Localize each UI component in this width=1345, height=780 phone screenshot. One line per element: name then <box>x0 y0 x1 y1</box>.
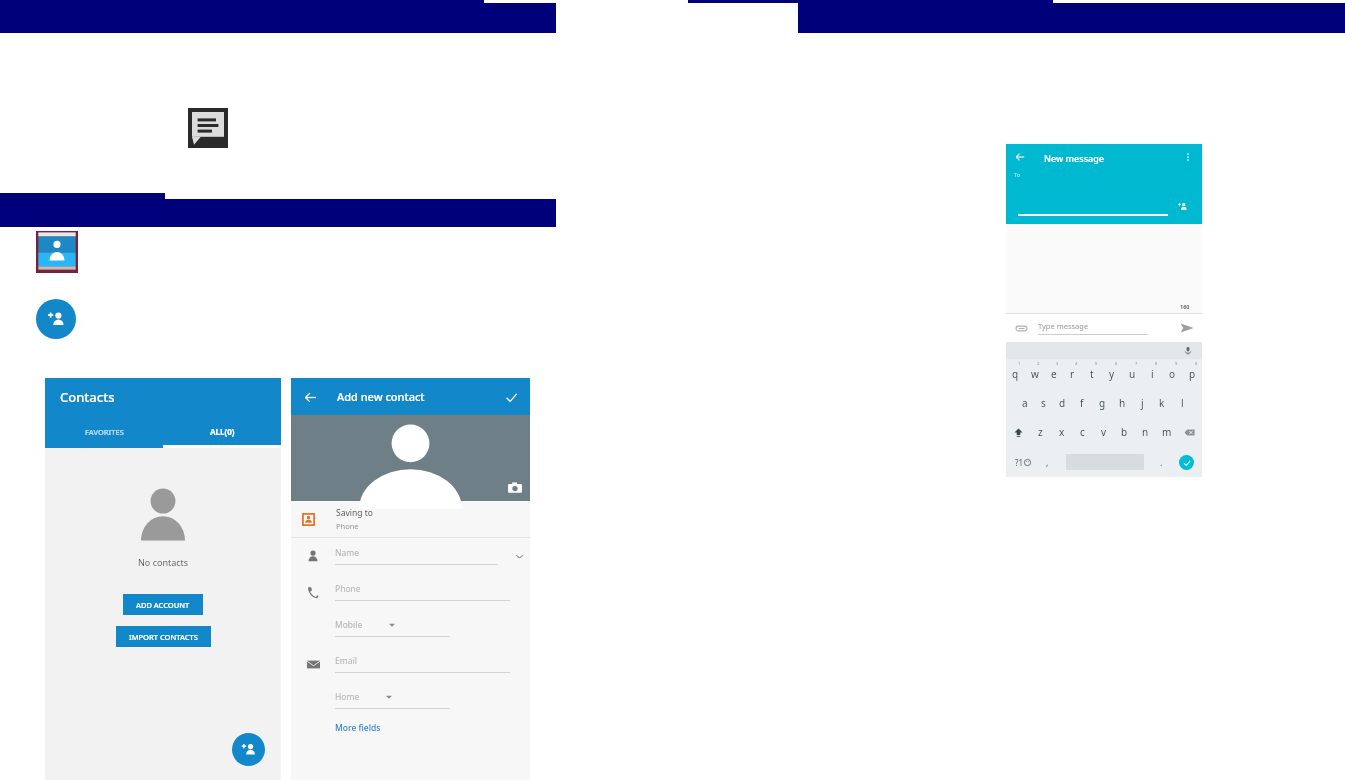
staticText: e <box>1051 367 1057 381</box>
staticText: No contacts <box>138 556 189 568</box>
button[interactable]: x <box>1051 417 1072 447</box>
staticText: Saving to <box>336 507 373 519</box>
staticText: 4 <box>1075 361 1078 366</box>
staticText: m <box>1162 425 1172 439</box>
button[interactable]: 7 <box>1122 359 1142 388</box>
staticText: Phone <box>335 583 361 595</box>
staticText: p <box>1189 367 1196 381</box>
staticText: 160 <box>1180 303 1190 310</box>
staticText: a <box>1022 396 1028 410</box>
button[interactable]: Email <box>291 646 530 682</box>
staticText: FAVORITES <box>85 427 124 437</box>
staticText: j <box>1141 396 1144 410</box>
button[interactable]: More fields <box>335 722 381 734</box>
staticText: 6 <box>1115 361 1118 366</box>
button[interactable]: a <box>1015 388 1034 417</box>
staticText: 3 <box>1056 361 1059 366</box>
staticText: b <box>1121 425 1128 439</box>
button[interactable]: Add contact <box>36 299 76 339</box>
staticText: c <box>1080 425 1085 439</box>
button[interactable]: Take photo <box>508 481 522 495</box>
button[interactable]: j <box>1132 388 1152 417</box>
button[interactable]: Create contact <box>232 733 265 766</box>
button[interactable]: ?1 <box>1006 447 1039 477</box>
staticText: . <box>1160 456 1163 468</box>
staticText: 0 <box>1195 361 1198 366</box>
button[interactable]: Attach <box>1014 321 1028 335</box>
button[interactable]: z <box>1030 417 1051 447</box>
staticText: Home <box>335 691 360 703</box>
button[interactable]: . <box>1153 447 1170 477</box>
staticText: More fields <box>335 722 381 734</box>
staticText: Add new contact <box>337 389 425 404</box>
button[interactable]: IMPORT CONTACTS <box>116 626 211 647</box>
button[interactable]: 3 <box>1044 359 1063 388</box>
button[interactable]: ADD ACCOUNT <box>123 594 203 615</box>
staticText: Email <box>335 655 357 667</box>
button[interactable]: Back <box>1011 148 1029 166</box>
button[interactable]: h <box>1112 388 1132 417</box>
button[interactable]: Voice input <box>1182 345 1194 357</box>
button[interactable]: ALL(0) <box>163 415 281 448</box>
button[interactable]: Home <box>291 682 530 718</box>
button[interactable]: k <box>1152 388 1172 417</box>
staticText: z <box>1038 425 1043 439</box>
button[interactable]: Saving to <box>291 501 530 537</box>
staticText: Type message <box>1038 321 1089 331</box>
button[interactable]: 2 <box>1025 359 1044 388</box>
button[interactable]: Phone <box>291 574 530 610</box>
button[interactable]: Name <box>291 538 530 574</box>
button[interactable]: 1 <box>1006 359 1025 388</box>
staticText: r <box>1070 367 1075 381</box>
staticText: q <box>1012 367 1019 381</box>
button[interactable]: c <box>1072 417 1093 447</box>
staticText: 1 <box>1018 361 1021 366</box>
button[interactable]: FAVORITES <box>45 415 163 448</box>
button[interactable]: 6 <box>1102 359 1122 388</box>
button[interactable]: Back <box>299 386 321 408</box>
button[interactable]: More options <box>1180 149 1196 165</box>
staticText: t <box>1090 367 1094 381</box>
staticText: , <box>1046 456 1049 468</box>
staticText: IMPORT CONTACTS <box>129 632 198 642</box>
button[interactable]: b <box>1114 417 1135 447</box>
staticText: ?1 <box>1015 457 1024 468</box>
button[interactable]: Send <box>1176 317 1198 339</box>
button[interactable]: Mobile <box>291 610 530 646</box>
button[interactable]: Add recipient <box>1174 198 1190 214</box>
button[interactable]: 8 <box>1142 359 1162 388</box>
button[interactable]: Save <box>500 386 522 408</box>
staticText: h <box>1119 396 1126 410</box>
button[interactable]: 9 <box>1162 359 1182 388</box>
staticText: o <box>1169 367 1176 381</box>
button[interactable]: Shift <box>1006 417 1030 447</box>
button[interactable]: v <box>1093 417 1114 447</box>
button[interactable]: 0 <box>1182 359 1202 388</box>
button[interactable]: s <box>1034 388 1053 417</box>
button[interactable]: 5 <box>1082 359 1102 388</box>
staticText: 7 <box>1135 361 1138 366</box>
staticText: Name <box>335 547 359 559</box>
staticText: y <box>1109 367 1115 381</box>
button[interactable]: l <box>1172 388 1192 417</box>
staticText: v <box>1101 425 1107 439</box>
staticText: s <box>1041 396 1046 410</box>
staticText: i <box>1151 367 1154 381</box>
button[interactable]: Backspace <box>1177 417 1202 447</box>
button[interactable]: g <box>1092 388 1112 417</box>
button[interactable]: , <box>1039 447 1056 477</box>
staticText: Mobile <box>335 619 363 631</box>
button[interactable]: n <box>1135 417 1156 447</box>
staticText: f <box>1080 396 1084 410</box>
staticText: g <box>1099 396 1106 410</box>
button[interactable]: m <box>1156 417 1177 447</box>
button[interactable]: d <box>1053 388 1072 417</box>
button[interactable]: Enter <box>1170 447 1202 477</box>
staticText: New message <box>1044 152 1104 164</box>
button[interactable]: f <box>1072 388 1092 417</box>
button[interactable]: 4 <box>1063 359 1082 388</box>
staticText: ADD ACCOUNT <box>136 600 190 610</box>
staticText: 9 <box>1175 361 1178 366</box>
button[interactable]: Space <box>1056 454 1153 470</box>
staticText: w <box>1031 367 1039 381</box>
